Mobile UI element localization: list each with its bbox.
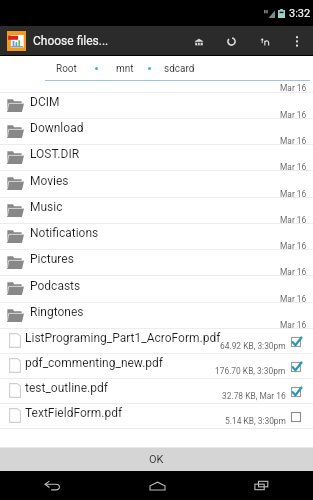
- button[interactable]: TextFieldForm.pdf: [0, 404, 313, 429]
- button[interactable]: Home: [105, 471, 209, 500]
- button[interactable]: Select file: [291, 412, 301, 422]
- button[interactable]: Ringtones: [0, 303, 313, 329]
- staticText: TextFieldForm.pdf: [25, 406, 123, 420]
- staticText: Mar 16: [280, 320, 307, 330]
- staticText: 176.70 KB, 3:30pm: [215, 366, 286, 376]
- staticText: Choose files...: [33, 34, 109, 48]
- staticText: Mar 16: [280, 189, 307, 199]
- staticText: OK: [149, 453, 164, 466]
- staticText: ListPrograming_Part1_AcroForm.pdf: [25, 331, 221, 345]
- button[interactable]: Up one level: [248, 26, 281, 55]
- staticText: Notifications: [30, 226, 99, 240]
- staticText: Mar 16: [280, 162, 307, 172]
- staticText: 32.78 KB, Mar 16: [222, 391, 286, 401]
- button[interactable]: Notifications: [0, 224, 313, 250]
- staticText: Mar 16: [280, 267, 307, 277]
- button[interactable]: Select file: [291, 362, 301, 372]
- staticText: Download: [30, 121, 84, 135]
- button[interactable]: DCIM: [0, 93, 313, 119]
- staticText: mnt: [116, 63, 134, 75]
- staticText: Mar 16: [280, 83, 307, 93]
- button[interactable]: Home: [182, 26, 215, 55]
- button[interactable]: Root: [56, 63, 77, 75]
- button[interactable]: Download: [0, 119, 313, 145]
- staticText: 3:32: [289, 7, 311, 20]
- button[interactable]: Select file: [291, 337, 301, 347]
- button[interactable]: Recent apps: [209, 471, 313, 500]
- button[interactable]: pdf_commenting_new.pdf: [0, 354, 313, 379]
- button[interactable]: Podcasts: [0, 276, 313, 303]
- button[interactable]: OK: [0, 447, 313, 471]
- staticText: Mar 16: [280, 241, 307, 251]
- staticText: Mar 16: [280, 294, 307, 304]
- staticText: Podcasts: [30, 279, 81, 293]
- button[interactable]: ListPrograming_Part1_AcroForm.pdf: [0, 329, 313, 354]
- staticText: Movies: [30, 174, 69, 188]
- staticText: sdcard: [164, 63, 195, 75]
- button[interactable]: test_outline.pdf: [0, 379, 313, 404]
- button[interactable]: LOST.DIR: [0, 145, 313, 171]
- button[interactable]: Select file: [291, 387, 301, 397]
- button[interactable]: Music: [0, 198, 313, 224]
- staticText: LOST.DIR: [30, 147, 80, 161]
- button[interactable]: sdcard: [164, 63, 195, 75]
- staticText: Mar 16: [280, 215, 307, 225]
- staticText: DCIM: [30, 95, 60, 109]
- button[interactable]: mnt: [116, 63, 134, 75]
- staticText: 64.92 KB, 3:30pm: [220, 341, 286, 351]
- button[interactable]: Movies: [0, 171, 313, 198]
- staticText: 5.14 KB, 3:30pm: [225, 416, 286, 426]
- staticText: Mar 16: [280, 110, 307, 120]
- staticText: Music: [30, 200, 63, 214]
- staticText: pdf_commenting_new.pdf: [25, 356, 163, 370]
- button[interactable]: Pictures: [0, 250, 313, 276]
- staticText: Ringtones: [30, 305, 84, 319]
- button[interactable]: More options: [281, 26, 312, 55]
- staticText: Pictures: [30, 252, 74, 266]
- staticText: test_outline.pdf: [25, 381, 108, 395]
- button[interactable]: Back: [0, 471, 105, 500]
- button[interactable]: Refresh: [215, 26, 248, 55]
- staticText: Mar 16: [280, 136, 307, 146]
- button[interactable]: Mar 16: [0, 81, 313, 93]
- staticText: Root: [56, 63, 77, 75]
